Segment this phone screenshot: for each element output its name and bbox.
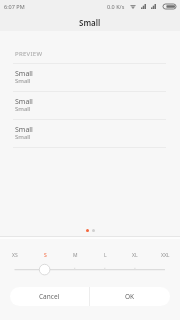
button[interactable]: OK <box>90 287 170 306</box>
staticText: M <box>73 252 78 259</box>
button[interactable]: Small <box>0 119 180 147</box>
staticText: Small <box>15 97 33 107</box>
other: Signal <box>141 4 146 9</box>
button[interactable]: Small <box>0 63 180 91</box>
staticText: Small <box>15 125 33 135</box>
staticText: Small <box>15 133 31 141</box>
button[interactable]: Cancel <box>10 287 89 306</box>
staticText: Small <box>15 77 31 85</box>
staticText: 6:07 PM <box>4 3 25 10</box>
staticText: PREVIEW <box>15 50 43 58</box>
other: Wi-Fi <box>130 5 136 9</box>
staticText: Cancel <box>39 292 60 301</box>
other: Signal <box>151 4 156 9</box>
staticText: 0.0 K/s <box>107 3 125 10</box>
staticText: OK <box>125 292 135 301</box>
staticText: XXL <box>161 252 170 259</box>
button[interactable]: XL <box>123 250 147 260</box>
staticText: Small <box>15 105 31 113</box>
button[interactable]: XS <box>3 250 27 260</box>
button[interactable]: Small <box>0 91 180 119</box>
staticText: Small <box>79 17 101 28</box>
staticText: S <box>44 252 47 259</box>
button[interactable]: XXL <box>153 250 177 260</box>
button[interactable]: L <box>93 250 117 260</box>
staticText: L <box>104 252 107 259</box>
button[interactable]: S <box>33 250 57 260</box>
staticText: XS <box>12 252 18 259</box>
staticText: XL <box>132 252 138 259</box>
other: Battery <box>163 4 176 9</box>
button[interactable]: M <box>63 250 87 260</box>
staticText: Small <box>15 69 33 79</box>
